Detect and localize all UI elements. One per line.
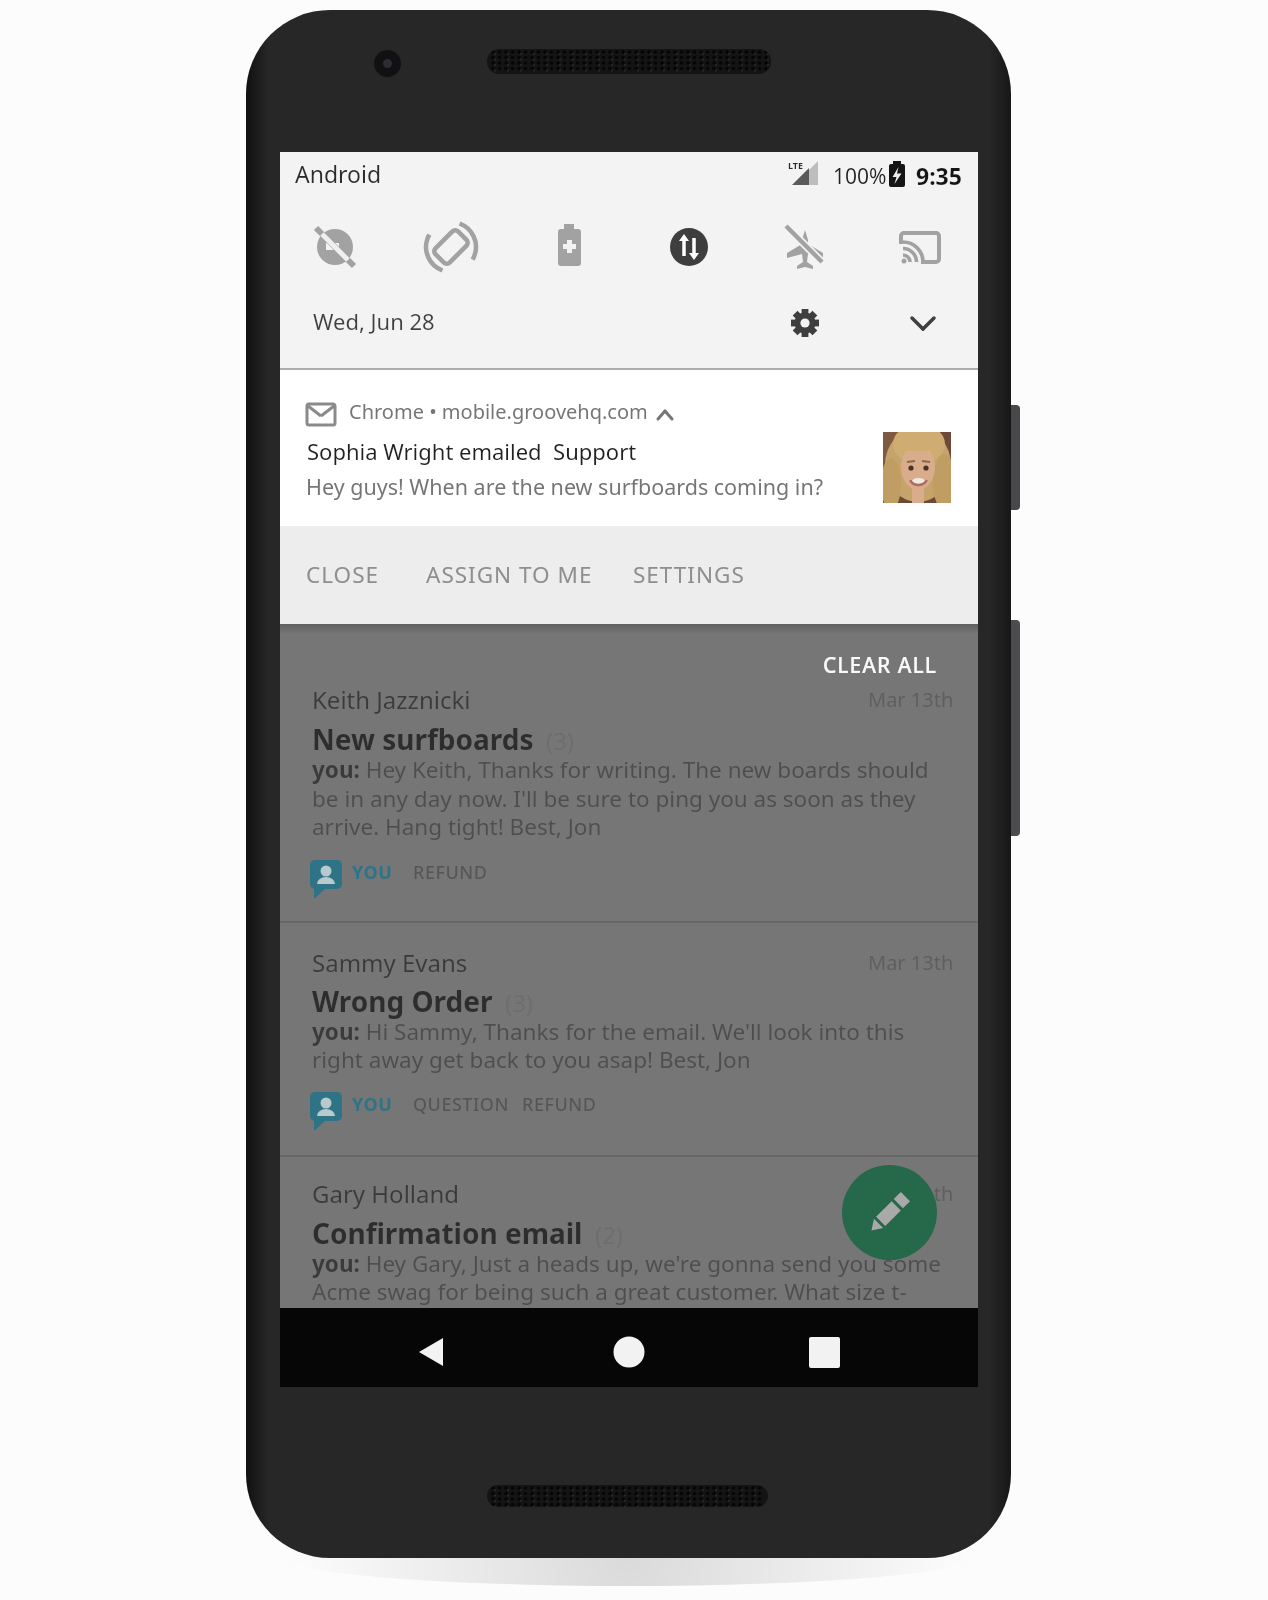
staticText: Wed, Jun 28 (313, 306, 435, 336)
button[interactable] (842, 1165, 937, 1260)
button[interactable] (280, 370, 978, 526)
button[interactable] (280, 677, 978, 921)
staticText: CLOSE (306, 559, 379, 590)
staticText: SETTINGS (633, 559, 745, 590)
button[interactable] (775, 293, 835, 353)
staticText: REFUND (413, 860, 488, 885)
staticText: right away get back to you asap! Best, J… (312, 1044, 751, 1075)
staticText: Sammy Evans (312, 946, 468, 979)
button[interactable] (893, 294, 953, 354)
button[interactable] (810, 640, 960, 684)
staticText: New surfboards (3) (312, 720, 575, 758)
staticText: Sophia Wright emailed Support (307, 436, 637, 466)
staticText: CLEAR ALL (823, 651, 937, 680)
staticText: YOU (352, 860, 393, 885)
staticText: Gary Holland (312, 1177, 460, 1210)
staticText: YOU (352, 1092, 393, 1117)
staticText: Wrong Order (3) (312, 982, 534, 1020)
staticText: Android (295, 158, 382, 189)
staticText: 100% (833, 162, 887, 191)
staticText: QUESTION (413, 1092, 509, 1117)
staticText: Keith Jazznicki (312, 683, 471, 716)
button[interactable] (390, 1308, 490, 1387)
button[interactable] (579, 1308, 679, 1387)
staticText: 9:35 (916, 160, 962, 191)
staticText: LTE (788, 159, 804, 171)
button[interactable] (280, 1157, 978, 1308)
button[interactable] (416, 542, 596, 608)
button[interactable] (296, 542, 406, 608)
staticText: Hey guys! When are the new surfboards co… (306, 472, 824, 501)
staticText: you: Hi Sammy, Thanks for the email. We'… (312, 1016, 905, 1047)
staticText: Mar 13th (868, 686, 954, 713)
staticText: ASSIGN TO ME (426, 559, 593, 590)
staticText: you: Hey Keith, Thanks for writing. The … (312, 754, 929, 785)
staticText: Confirmation email (2) (312, 1214, 624, 1252)
button[interactable] (280, 923, 978, 1155)
staticText: Chrome • mobile.groovehq.com (349, 398, 648, 425)
staticText: be in any day now. I'll be sure to ping … (312, 783, 916, 814)
staticText: you: Hey Gary, Just a heads up, we're go… (312, 1248, 941, 1279)
staticText: REFUND (522, 1092, 597, 1117)
staticText: arrive. Hang tight! Best, Jon (312, 811, 602, 842)
staticText: Mar 13th (868, 949, 954, 976)
button[interactable] (774, 1308, 874, 1387)
staticText: Acme swag for being such a great custome… (312, 1276, 907, 1307)
button[interactable] (623, 542, 753, 608)
staticText: Mar 11th (868, 1180, 954, 1207)
